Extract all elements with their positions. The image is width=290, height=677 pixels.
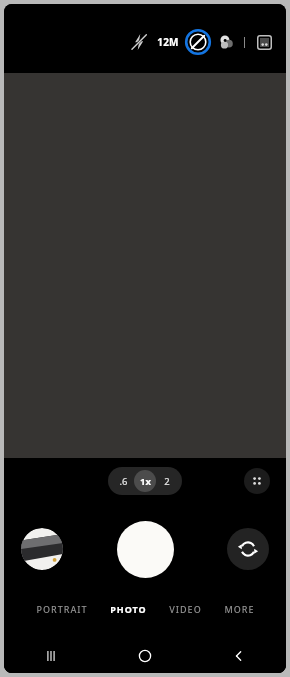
button[interactable]: Take photo xyxy=(117,521,174,578)
button[interactable]: Motion photo off xyxy=(185,29,211,55)
staticText: PHOTO xyxy=(110,603,147,615)
button[interactable]: 2 xyxy=(156,470,178,492)
button[interactable]: VIDEO xyxy=(167,600,204,618)
staticText: 1x xyxy=(140,475,151,488)
staticText: .6 xyxy=(119,475,128,488)
button[interactable]: 12M xyxy=(157,35,179,49)
button[interactable]: Back xyxy=(192,639,286,673)
button[interactable]: PHOTO xyxy=(108,600,149,618)
button[interactable]: Recent apps xyxy=(4,639,98,673)
staticText: VIDEO xyxy=(169,603,202,615)
button[interactable]: Flash off xyxy=(128,31,150,53)
button[interactable]: Filters xyxy=(215,31,237,53)
button[interactable]: Home xyxy=(98,639,192,673)
button[interactable]: PORTRAIT xyxy=(34,600,90,618)
button[interactable]: Settings xyxy=(253,31,275,53)
button[interactable]: .6 xyxy=(112,470,134,492)
button[interactable]: More options xyxy=(244,468,270,494)
staticText: 12M xyxy=(157,35,179,49)
button[interactable]: Switch camera xyxy=(227,528,269,570)
button[interactable]: MORE xyxy=(222,600,257,618)
button[interactable]: 1x xyxy=(134,470,156,492)
button[interactable]: Gallery xyxy=(21,528,63,570)
staticText: 2 xyxy=(164,475,170,488)
staticText: MORE xyxy=(224,603,255,615)
staticText: PORTRAIT xyxy=(36,603,88,615)
